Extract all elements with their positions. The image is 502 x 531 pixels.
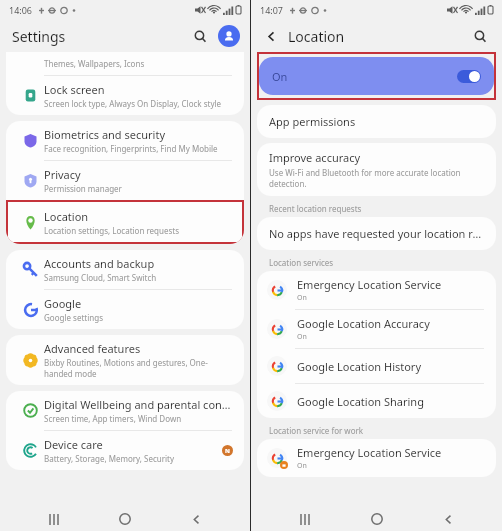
button[interactable]: Biometrics and security <box>6 121 244 160</box>
staticText: Location <box>288 27 345 46</box>
staticText: Location settings, Location requests <box>44 225 180 236</box>
button[interactable]: Google Location History <box>257 349 496 383</box>
staticText: Bixby Routines, Motions and gestures, On… <box>44 357 233 379</box>
staticText: On <box>297 332 307 342</box>
button[interactable]: Location <box>8 202 242 242</box>
staticText: Themes, Wallpapers, Icons <box>44 58 145 69</box>
staticText: Settings <box>12 27 66 46</box>
button[interactable]: Account <box>218 25 240 47</box>
staticText: Permission manager <box>44 183 122 194</box>
staticText: Location services <box>269 257 334 268</box>
button[interactable]: Google <box>6 290 244 329</box>
staticText: Google Location Sharing <box>297 394 424 409</box>
button[interactable]: Search <box>188 24 212 48</box>
staticText: 14:07 <box>260 4 284 16</box>
staticText: N <box>225 447 230 455</box>
staticText: On <box>297 293 307 303</box>
staticText: Lock screen <box>44 82 105 97</box>
staticText: 14:06 <box>9 4 33 16</box>
staticText: Improve accuracy <box>269 150 361 165</box>
button[interactable]: Back <box>179 507 213 531</box>
staticText: Privacy <box>44 167 81 182</box>
staticText: Samsung Cloud, Smart Switch <box>44 272 157 283</box>
button[interactable]: Home <box>360 507 394 531</box>
button[interactable]: Emergency Location Service <box>257 271 496 309</box>
button[interactable]: Accounts and backup <box>6 250 244 289</box>
staticText: Emergency Location Service <box>297 277 442 292</box>
button[interactable]: Search <box>468 24 492 48</box>
staticText: Recent location requests <box>269 203 362 214</box>
staticText: Location service for work <box>269 425 364 436</box>
button[interactable]: Lock screen <box>6 76 244 115</box>
staticText: Battery, Storage, Memory, Security <box>44 453 175 464</box>
staticText: On <box>272 69 288 84</box>
staticText: Google Location Accuracy <box>297 316 430 331</box>
button[interactable]: App permissions <box>257 105 496 138</box>
staticText: Location <box>44 209 89 224</box>
staticText: Device care <box>44 437 103 452</box>
staticText: Google Location History <box>297 359 422 374</box>
button[interactable]: Recents <box>288 507 322 531</box>
button[interactable]: Back <box>431 507 465 531</box>
button[interactable]: Back <box>260 25 282 47</box>
button[interactable]: On <box>259 57 494 95</box>
button[interactable]: Advanced features <box>6 335 244 385</box>
staticText: Accounts and backup <box>44 256 155 271</box>
staticText: Use Wi-Fi and Bluetooth for more accurat… <box>269 167 484 189</box>
staticText: Google <box>44 296 82 311</box>
button[interactable]: Themes, Wallpapers, Icons <box>6 52 244 75</box>
button[interactable]: No apps have requested your location rec… <box>257 217 496 250</box>
staticText: Face recognition, Fingerprints, Find My … <box>44 143 218 154</box>
button[interactable]: Google Location Accuracy <box>257 310 496 348</box>
staticText: Biometrics and security <box>44 127 165 142</box>
button[interactable]: Privacy <box>6 161 244 200</box>
button[interactable]: Google Location Sharing <box>257 384 496 418</box>
button[interactable]: Digital Wellbeing and parental controls <box>6 391 244 430</box>
staticText: On <box>297 461 307 471</box>
staticText: App permissions <box>269 114 356 129</box>
staticText: Screen lock type, Always On Display, Clo… <box>44 98 222 109</box>
staticText: Advanced features <box>44 341 141 356</box>
button[interactable]: Emergency Location Service <box>257 439 496 477</box>
button[interactable]: Improve accuracy <box>257 143 496 196</box>
button[interactable]: Home <box>108 507 142 531</box>
staticText: Screen time, App timers, Wind Down <box>44 413 182 424</box>
button[interactable]: Device care <box>6 431 244 470</box>
button[interactable]: Recents <box>37 507 71 531</box>
staticText: Emergency Location Service <box>297 445 442 460</box>
staticText: Google settings <box>44 312 103 323</box>
staticText: Digital Wellbeing and parental controls <box>44 397 233 412</box>
staticText: No apps have requested your location rec… <box>269 226 484 241</box>
